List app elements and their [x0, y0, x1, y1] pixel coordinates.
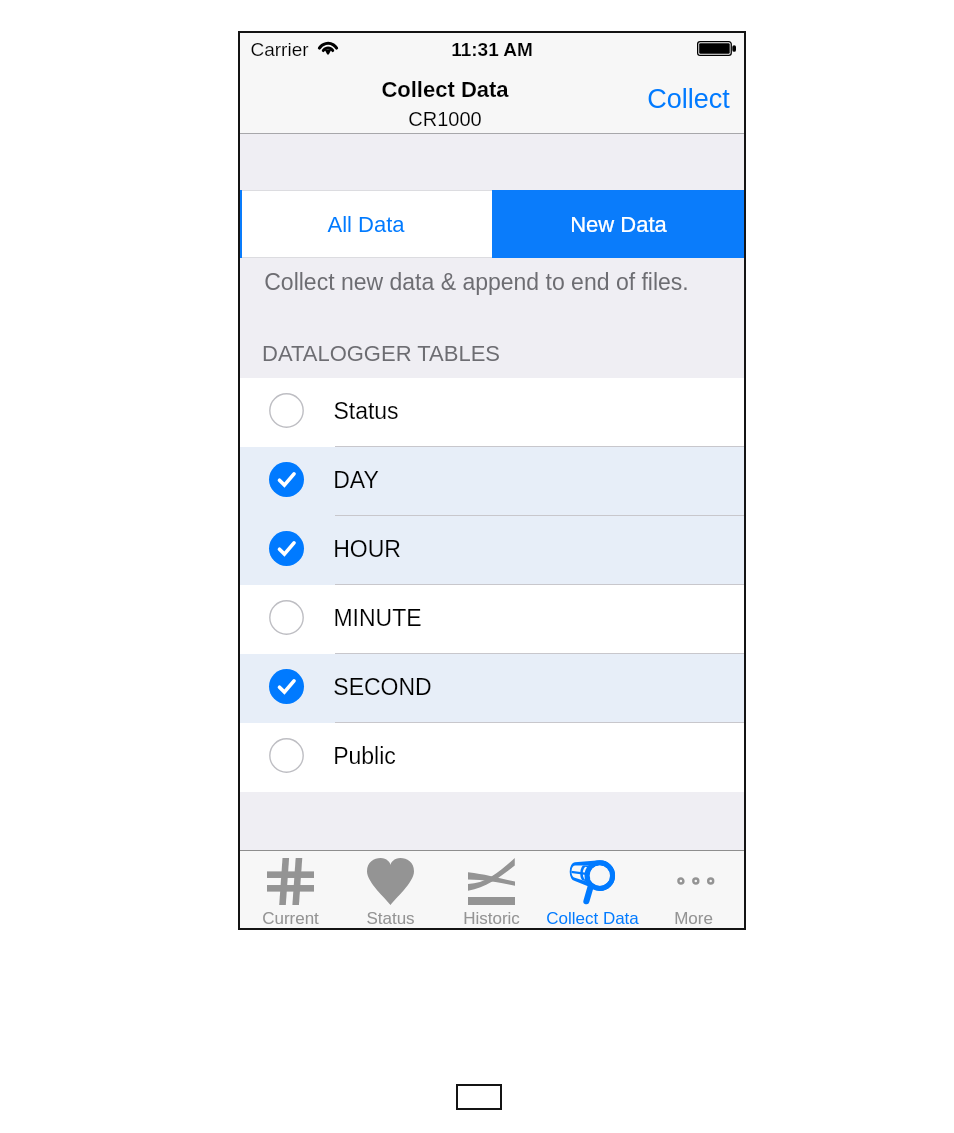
button[interactable]: Current [240, 850, 340, 928]
staticText: Collect [647, 84, 730, 114]
button[interactable]: Public [240, 723, 744, 792]
staticText: 11:31 AM [451, 39, 533, 60]
button[interactable]: New Data [492, 190, 744, 258]
button[interactable]: SECOND [240, 654, 744, 723]
button[interactable]: All Data [240, 190, 492, 258]
staticText: New Data [570, 212, 667, 237]
button[interactable]: Collect [633, 76, 744, 122]
button[interactable]: More [643, 850, 744, 928]
staticText: More [674, 909, 713, 928]
staticText: Status [333, 398, 399, 424]
staticText: Collect Data [381, 77, 509, 102]
button[interactable]: Status [240, 378, 744, 447]
staticText: CR1000 [408, 108, 482, 130]
button[interactable]: Historic [441, 850, 542, 928]
staticText: All Data [327, 212, 405, 237]
staticText: HOUR [333, 536, 401, 562]
button[interactable]: Status [340, 850, 441, 928]
button[interactable]: MINUTE [240, 585, 744, 654]
staticText: Historic [463, 909, 520, 928]
staticText: MINUTE [333, 605, 422, 631]
staticText: DATALOGGER TABLES [262, 341, 500, 366]
button[interactable]: DAY [240, 447, 744, 516]
staticText: Collect new data & append to end of file… [264, 269, 689, 295]
button[interactable]: Collect Data [542, 850, 643, 928]
staticText: Collect Data [546, 909, 639, 928]
button[interactable]: HOUR [240, 516, 744, 585]
staticText: Status [366, 909, 415, 928]
staticText: Public [333, 743, 396, 769]
staticText: Carrier [250, 39, 309, 60]
staticText: DAY [333, 467, 379, 493]
staticText: SECOND [333, 674, 432, 700]
staticText: Current [262, 909, 319, 928]
